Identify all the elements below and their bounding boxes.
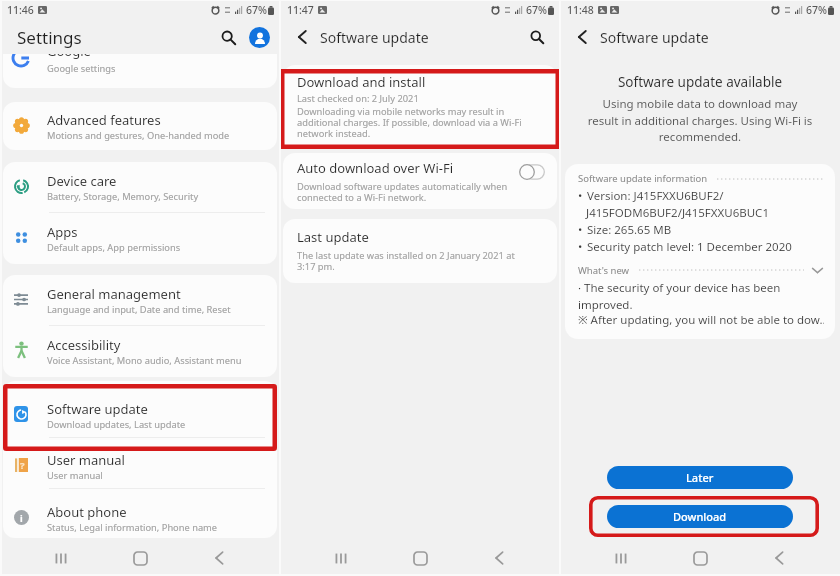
button[interactable]: ?	[3, 438, 277, 489]
button[interactable]: General management	[3, 275, 277, 326]
staticText: Last checked on: 2 July 2021	[297, 92, 419, 105]
staticText: Software update	[47, 400, 148, 418]
staticText: General management	[47, 285, 181, 303]
button[interactable]: Later	[607, 466, 793, 489]
staticText: Software update	[600, 28, 709, 47]
staticText: The last update was installed on 2 Janua…	[297, 249, 515, 272]
staticText: What's new	[578, 264, 630, 277]
staticText: Software update	[320, 28, 429, 47]
staticText: Device care	[47, 172, 117, 190]
staticText: J415FODM6BUF2/J415FXXU6BUC1	[586, 205, 769, 221]
staticText: Last update	[297, 228, 369, 246]
button[interactable]: Device care	[3, 162, 277, 213]
staticText: i	[20, 512, 23, 524]
staticText: Version: J415FXXU6BUF2/	[587, 188, 724, 204]
button[interactable]: Home	[402, 540, 438, 576]
staticText: 11:46	[7, 3, 34, 17]
staticText: Size: 265.65 MB	[587, 222, 672, 238]
button[interactable]: Google	[3, 54, 277, 88]
button[interactable]: Recents	[603, 540, 639, 576]
button[interactable]: Download and install	[283, 65, 557, 149]
staticText: •	[578, 239, 583, 255]
staticText: Auto download over Wi-Fi	[297, 159, 454, 177]
button[interactable]: Download	[607, 505, 793, 528]
staticText: 11:47	[287, 3, 314, 17]
button[interactable]: Navigate back	[572, 27, 592, 47]
staticText: Security patch level: 1 December 2020	[587, 239, 792, 255]
staticText: Download	[673, 509, 727, 524]
button[interactable]: Auto download over Wi-Fi toggle	[519, 164, 545, 180]
staticText: About phone	[47, 503, 127, 521]
staticText: Settings	[17, 26, 82, 49]
staticText: Accessibility	[47, 336, 121, 354]
staticText: •	[578, 222, 583, 238]
staticText: User manual	[47, 451, 125, 469]
button[interactable]: Search	[526, 26, 548, 48]
staticText: •	[578, 188, 583, 204]
staticText: 67%	[246, 3, 267, 17]
staticText: Using mobile data to download may result…	[560, 96, 840, 144]
staticText: Software update available	[560, 73, 840, 91]
staticText: Downloading via mobile networks may resu…	[297, 105, 522, 139]
staticText: Battery, Storage, Memory, Security	[47, 190, 199, 203]
staticText: 67%	[806, 3, 827, 17]
staticText: Apps	[47, 223, 78, 241]
button[interactable]: Back	[761, 540, 797, 576]
button[interactable]: Recents	[323, 540, 359, 576]
staticText: Later	[686, 470, 714, 485]
button[interactable]: Back	[481, 540, 517, 576]
staticText: Software update information	[578, 172, 708, 185]
button[interactable]: Expand what's new	[810, 263, 824, 277]
staticText: ?	[20, 459, 25, 472]
staticText: Default apps, App permissions	[47, 241, 181, 254]
staticText: User manual	[47, 469, 103, 482]
staticText: Download and install	[297, 73, 426, 91]
staticText: Download updates, Last update	[47, 418, 186, 431]
staticText: Download software updates automatically …	[297, 180, 508, 203]
button[interactable]: Search	[215, 24, 241, 50]
staticText: · The security of your device has been i…	[578, 280, 781, 312]
staticText: Motions and gestures, One-handed mode	[47, 129, 230, 142]
button[interactable]: Accessibility	[3, 326, 277, 377]
button[interactable]: Home	[682, 540, 718, 576]
button[interactable]: Software update	[3, 381, 277, 438]
staticText: Status, Legal information, Phone name	[47, 521, 218, 534]
button[interactable]: i	[3, 489, 277, 538]
button[interactable]: Advanced features	[3, 102, 277, 150]
button[interactable]: Last update	[283, 219, 557, 283]
button[interactable]: Auto download over Wi-Fi	[283, 153, 557, 209]
staticText: 11:48	[567, 3, 594, 17]
staticText: ※ After updating, you will not be able t…	[578, 312, 824, 328]
staticText: Voice Assistant, Mono audio, Assistant m…	[47, 354, 242, 367]
staticText: Language and input, Date and time, Reset	[47, 303, 231, 316]
staticText: Google settings	[47, 62, 116, 75]
staticText: 67%	[526, 3, 547, 17]
staticText: Advanced features	[47, 111, 161, 129]
button[interactable]: Back	[201, 540, 237, 576]
button[interactable]: Home	[122, 540, 158, 576]
button[interactable]: Recents	[43, 540, 79, 576]
staticText: Google	[47, 54, 91, 60]
button[interactable]: Navigate back	[292, 27, 312, 47]
button[interactable]: Apps	[3, 213, 277, 264]
button[interactable]: Account	[249, 27, 270, 48]
